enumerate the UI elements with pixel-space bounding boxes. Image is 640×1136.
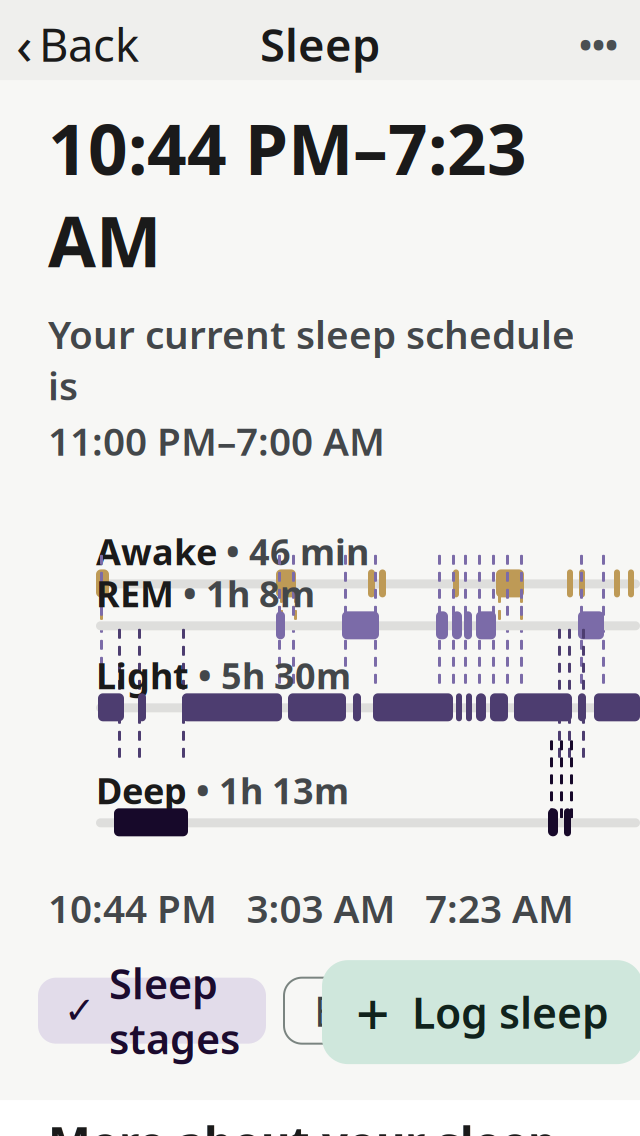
staticText: Light — [96, 651, 189, 699]
staticText: Sleep — [260, 14, 380, 74]
staticText: 1h 13m — [219, 766, 349, 814]
staticText: ‹ — [16, 9, 33, 79]
staticText: Deep — [96, 766, 187, 814]
button[interactable]: + — [322, 960, 640, 1064]
staticText: Awake — [96, 527, 217, 575]
staticText: • — [217, 527, 249, 575]
staticText: Sleep stages — [109, 956, 240, 1066]
staticText: Your current sleep schedule is — [48, 308, 575, 411]
staticText: 7:23 AM — [425, 882, 574, 934]
staticText: • — [187, 766, 219, 814]
staticText: • — [174, 569, 206, 617]
staticText: ✓ — [64, 989, 95, 1032]
staticText: 11:00 PM–7:00 AM — [48, 415, 385, 466]
button[interactable]: Benchmark — [284, 978, 567, 1044]
button[interactable]: ✓ — [38, 978, 266, 1044]
staticText: More about your sleep — [48, 1112, 557, 1136]
staticText: • — [189, 651, 221, 699]
staticText: REM — [96, 569, 174, 617]
staticText: ••• — [579, 21, 618, 67]
button[interactable]: More options — [557, 8, 640, 80]
staticText: 10:44 PM–7:23 AM — [48, 102, 527, 286]
staticText: 1h 8m — [206, 569, 315, 617]
staticText: 3:03 AM — [246, 882, 395, 934]
staticText: 5h 30m — [221, 651, 351, 699]
staticText: Back — [39, 14, 139, 74]
button[interactable]: ‹ — [0, 8, 155, 80]
staticText: 46 min — [249, 527, 369, 575]
staticText: Log sleep — [412, 984, 609, 1040]
staticText: Benchmark — [314, 983, 537, 1038]
staticText: 10:44 PM — [48, 882, 217, 934]
staticText: + — [356, 973, 390, 1051]
